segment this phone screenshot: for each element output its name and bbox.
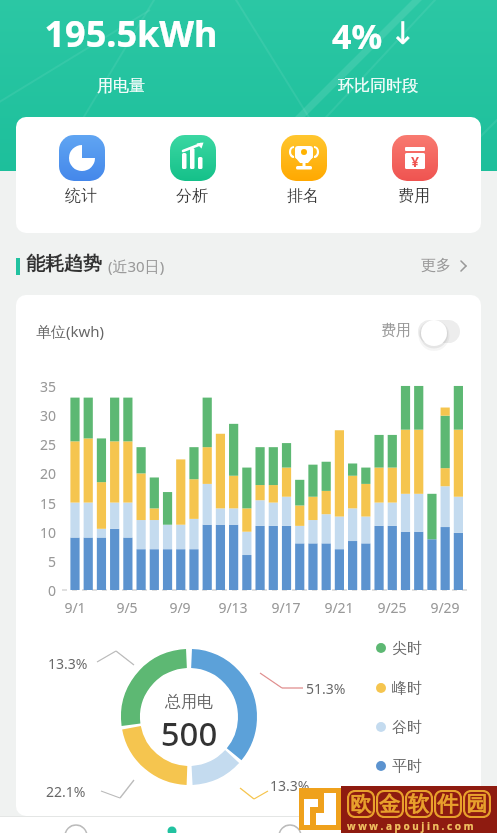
button[interactable] <box>373 679 433 701</box>
staticText: 用电量 <box>97 76 145 96</box>
staticText: 9/25 <box>366 598 418 617</box>
staticText: 园 <box>466 791 487 817</box>
button[interactable] <box>373 639 433 661</box>
staticText: 5 <box>18 552 56 571</box>
staticText: 欧 <box>350 791 371 817</box>
staticText: 9/13 <box>207 598 259 617</box>
button[interactable] <box>373 757 433 779</box>
button[interactable] <box>49 130 115 214</box>
staticText: 软 <box>408 791 429 817</box>
staticText: 51.3% <box>306 679 346 698</box>
staticText: 20 <box>18 464 56 483</box>
staticText: 13.3% <box>48 654 88 673</box>
staticText: ¥ <box>411 152 420 171</box>
staticText: 件 <box>437 791 458 817</box>
staticText: (近30日) <box>108 256 165 276</box>
button[interactable] <box>418 320 460 343</box>
button[interactable] <box>373 718 433 740</box>
staticText: 总用电 <box>165 692 213 712</box>
button[interactable] <box>382 130 448 214</box>
staticText: 单位(kwh) <box>36 321 105 341</box>
button[interactable] <box>419 251 473 277</box>
staticText: 金 <box>379 791 400 817</box>
staticText: 排名 <box>287 186 319 206</box>
staticText: 9/29 <box>419 598 471 617</box>
staticText: 10 <box>18 523 56 542</box>
staticText: 4% <box>307 13 407 59</box>
staticText: 环比同时段 <box>338 76 418 96</box>
staticText: 0 <box>18 581 56 600</box>
button[interactable] <box>40 816 150 833</box>
staticText: 9/21 <box>313 598 365 617</box>
staticText: w w w . a p o u j i n . c o m <box>347 819 474 833</box>
staticText: 9/9 <box>154 598 206 617</box>
staticText: 500 <box>149 711 229 756</box>
staticText: 平时 <box>392 757 422 776</box>
staticText: 峰时 <box>392 679 422 698</box>
staticText: 195.5kWh <box>36 9 226 58</box>
staticText: 25 <box>18 435 56 454</box>
staticText: 更多 <box>421 256 451 275</box>
staticText: 能耗趋势 <box>26 252 102 276</box>
button[interactable] <box>150 816 240 833</box>
staticText: 费用 <box>398 186 430 206</box>
staticText: 统计 <box>65 186 97 206</box>
staticText: 13.3% <box>270 776 310 795</box>
staticText: 35 <box>18 377 56 396</box>
button[interactable] <box>160 130 226 214</box>
staticText: 9/5 <box>101 598 153 617</box>
staticText: ↓ <box>390 15 416 51</box>
button[interactable] <box>271 130 337 214</box>
staticText: 15 <box>18 494 56 513</box>
staticText: 22.1% <box>46 782 86 801</box>
staticText: 尖时 <box>392 639 422 658</box>
staticText: 9/17 <box>260 598 312 617</box>
staticText: 谷时 <box>392 718 422 737</box>
staticText: 9/1 <box>49 598 101 617</box>
staticText: 费用 <box>381 321 411 340</box>
staticText: 分析 <box>176 186 208 206</box>
staticText: 30 <box>18 406 56 425</box>
